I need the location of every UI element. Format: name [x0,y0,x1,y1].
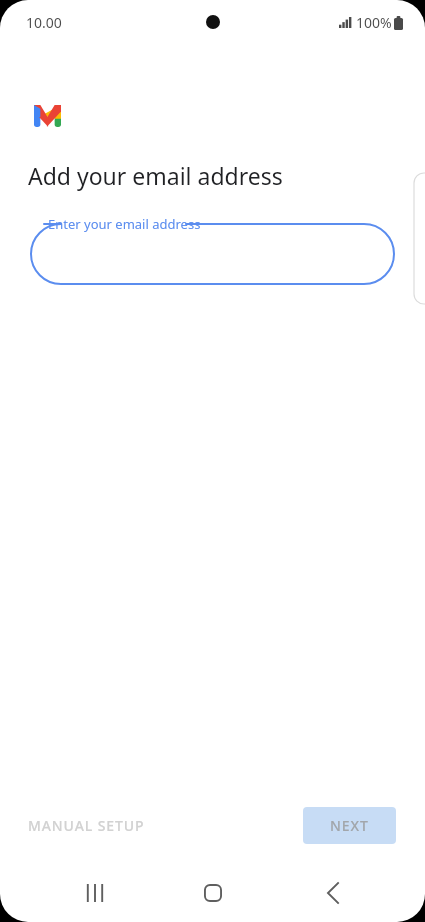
button[interactable]: Enter your email address [30,223,395,285]
button[interactable]: Back [309,869,357,917]
staticText: NEXT [330,816,369,835]
staticText: Enter your email address [48,215,201,233]
staticText: 100% [356,13,392,32]
button[interactable]: MANUAL SETUP [16,808,157,843]
staticText: 10.00 [26,13,62,32]
staticText: MANUAL SETUP [28,816,145,835]
staticText: Add your email address [28,160,283,191]
button[interactable]: Recent apps [71,869,119,917]
button[interactable]: NEXT [303,807,396,844]
button[interactable]: Home [189,869,237,917]
